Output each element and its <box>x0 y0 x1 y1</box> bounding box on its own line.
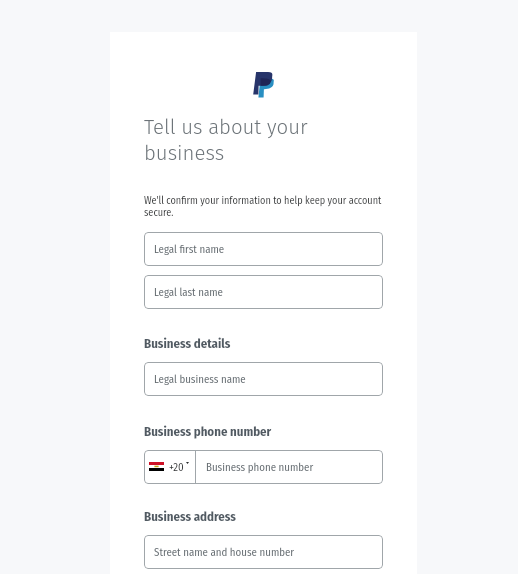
staticText: +20 <box>169 461 184 474</box>
staticText: We'll confirm your information to help k… <box>144 194 383 218</box>
staticText: Legal first name <box>154 243 225 256</box>
button[interactable]: Street name and house number <box>144 535 383 569</box>
button[interactable]: Select country calling code <box>144 450 195 484</box>
staticText: Street name and house number <box>154 546 295 559</box>
button[interactable]: Legal first name <box>144 232 383 266</box>
button[interactable]: Business phone number <box>196 450 383 484</box>
button[interactable]: Legal business name <box>144 362 383 396</box>
staticText: Business phone number <box>206 461 314 474</box>
staticText: Business address <box>144 509 236 524</box>
staticText: Legal business name <box>154 373 246 386</box>
staticText: Business details <box>144 336 231 351</box>
staticText: Legal last name <box>154 286 223 299</box>
staticText: Tell us about your business <box>144 115 383 165</box>
button[interactable]: Legal last name <box>144 275 383 309</box>
staticText: Business phone number <box>144 424 272 439</box>
